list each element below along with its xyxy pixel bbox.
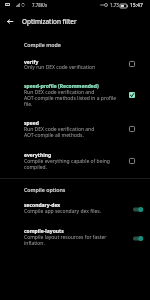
staticText: everything — [24, 152, 52, 159]
button[interactable]: Select option — [0, 145, 150, 177]
button[interactable]: Select option — [127, 156, 137, 166]
button[interactable]: Select option — [0, 76, 150, 113]
staticText: verify — [24, 59, 39, 66]
button[interactable]: Select option — [127, 124, 137, 134]
staticText: secondary-dex — [24, 202, 61, 209]
staticText: compiled. — [24, 164, 47, 171]
staticText: Compile layout resources for faster — [24, 234, 107, 241]
button[interactable]: Toggle — [131, 205, 144, 214]
staticText: compile-layouts — [24, 228, 64, 235]
staticText: Compile options — [24, 186, 66, 193]
button[interactable]: Select option — [0, 113, 150, 145]
staticText: Run DEX code verification and — [24, 89, 95, 96]
button[interactable]: Select option — [127, 90, 137, 100]
staticText: Compile mode — [24, 41, 61, 48]
button[interactable]: Select option — [0, 51, 150, 76]
button[interactable]: Back — [2, 12, 18, 30]
staticText: file. — [24, 101, 33, 108]
staticText: speed-profile (Recommended) — [24, 83, 99, 90]
staticText: 15:47 — [130, 2, 143, 9]
button[interactable]: Toggle — [0, 222, 150, 254]
staticText: Optimization filter — [22, 17, 77, 26]
staticText: 1.73 — [110, 2, 119, 8]
staticText: Compile everything capable of being — [24, 158, 110, 165]
staticText: AOT-compile methods listed in a profile — [24, 95, 117, 102]
staticText: Run DEX code verification and — [24, 126, 95, 133]
staticText: speed — [24, 120, 39, 127]
staticText: Compile app secondary dex files. — [24, 208, 102, 215]
staticText: AOT-compile all methods. — [24, 132, 84, 139]
staticText: inflation. — [24, 240, 45, 247]
button[interactable]: Select option — [127, 59, 137, 69]
button[interactable]: Toggle — [131, 234, 144, 243]
staticText: 7.78K/s — [32, 2, 48, 8]
button[interactable]: Toggle — [0, 196, 150, 222]
staticText: Only run DEX code verification — [24, 64, 96, 71]
